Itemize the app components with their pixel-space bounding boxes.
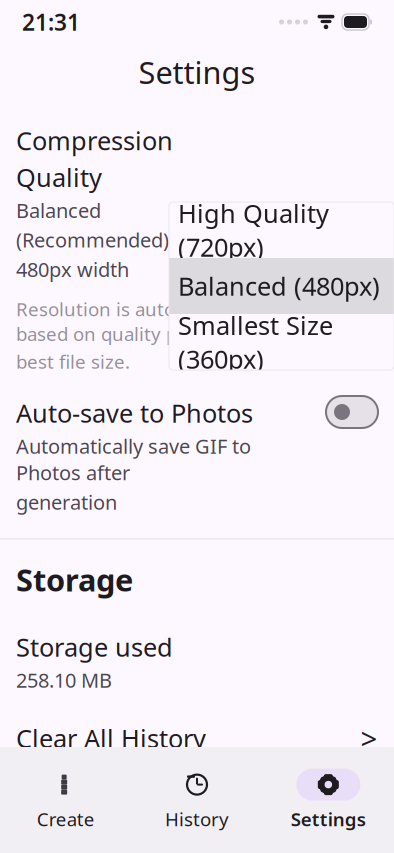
staticText: Create: [37, 807, 95, 831]
staticText: 480px width: [16, 256, 129, 283]
staticText: Automatically save GIF to Photos after: [16, 433, 251, 486]
staticText: High Quality (720px): [178, 196, 329, 264]
button[interactable]: Auto-save to Photos: [326, 396, 378, 428]
staticText: (Recommended) – Max: [16, 226, 229, 253]
staticText: Storage used: [16, 630, 173, 664]
button[interactable]: History: [131, 757, 263, 843]
staticText: Clear All History: [16, 721, 206, 755]
staticText: Storage: [16, 559, 133, 600]
button[interactable]: High Quality (720px): [169, 202, 394, 258]
staticText: Compression: [16, 124, 173, 157]
staticText: Settings: [138, 52, 255, 92]
staticText: Balanced: [16, 197, 101, 224]
staticText: 21:31: [22, 7, 80, 37]
staticText: Resolution is automatically optimized ba…: [16, 297, 345, 346]
button[interactable]: Balanced (480px): [169, 258, 394, 314]
staticText: History: [165, 807, 229, 831]
staticText: About: [16, 798, 108, 839]
button[interactable]: Create: [0, 757, 131, 843]
staticText: 258.10 MB: [16, 667, 112, 693]
button[interactable]: Smallest Size (360px): [169, 314, 394, 370]
staticText: Balanced (480px): [178, 269, 380, 303]
staticText: Settings: [291, 807, 366, 831]
staticText: Frame Rate: [16, 34, 151, 68]
button[interactable]: Clear All History: [0, 693, 394, 777]
staticText: Quality: [16, 160, 102, 194]
staticText: Auto-save to Photos: [16, 396, 253, 430]
button[interactable]: Settings: [263, 757, 394, 843]
staticText: generation: [16, 489, 117, 515]
staticText: Smallest Size (360px): [178, 308, 333, 376]
staticText: >: [360, 719, 377, 758]
staticText: best file size.: [16, 349, 130, 374]
